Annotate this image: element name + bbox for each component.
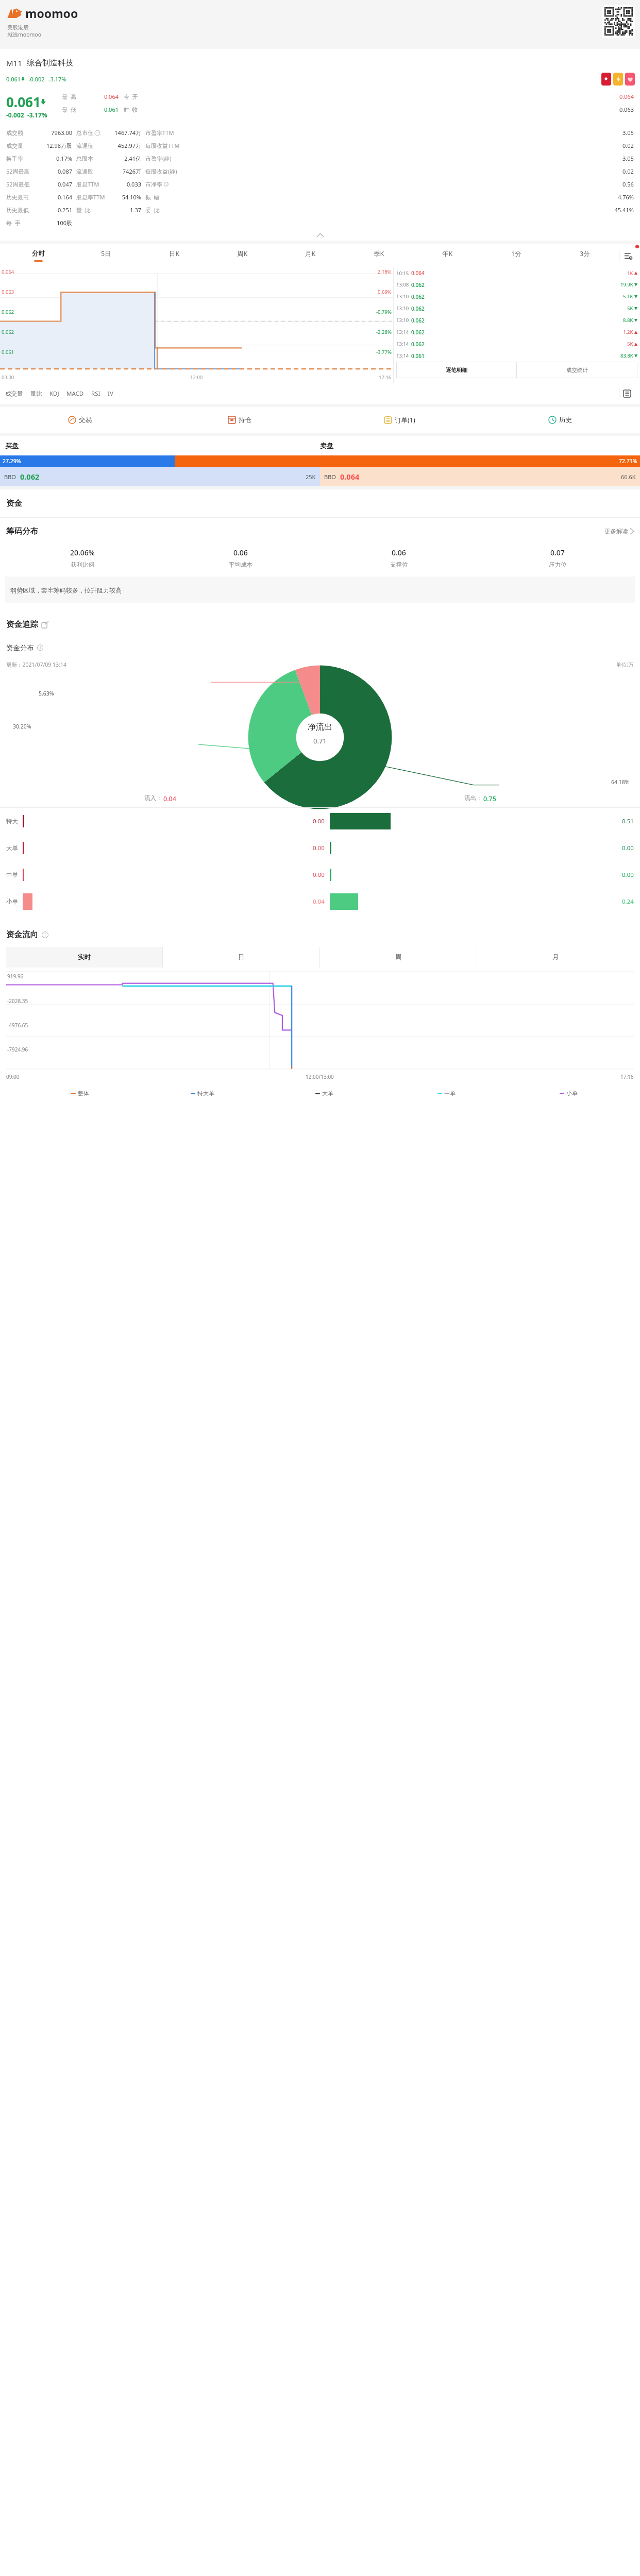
staticText: 0.06 <box>233 548 248 557</box>
staticText: 0.69% <box>378 289 392 295</box>
button[interactable]: 历史 <box>480 407 640 433</box>
button[interactable]: 1分 <box>482 244 550 267</box>
button[interactable]: MACD <box>66 389 91 398</box>
staticText: 持仓 <box>239 416 251 424</box>
staticText: 流通股 <box>76 168 93 175</box>
staticText: 0.07 <box>550 548 565 557</box>
staticText: 实时 <box>78 953 91 961</box>
staticText: 小单 <box>6 898 23 905</box>
staticText: 压力位 <box>549 561 567 568</box>
button[interactable]: 交易 <box>0 407 160 433</box>
button[interactable]: 逐笔明细 <box>396 362 516 378</box>
staticText: 12:00/13:00 <box>306 1073 334 1080</box>
staticText: 52周最低 <box>6 180 38 188</box>
staticText: moomoo <box>25 5 78 21</box>
staticText: 大单 <box>322 1090 333 1097</box>
staticText: 筹码分布 <box>6 526 38 536</box>
button[interactable]: IV <box>108 389 121 398</box>
staticText: 市盈率TTM <box>145 129 174 137</box>
button[interactable]: sg <box>601 73 611 86</box>
button[interactable]: 月K <box>276 244 345 267</box>
staticText: 17:16 <box>379 374 392 381</box>
staticText: 8.8K <box>623 317 633 324</box>
staticText: -7924.96 <box>7 1046 28 1053</box>
staticText: 0.064 <box>89 93 119 100</box>
staticText: 0.061 <box>6 75 21 83</box>
staticText: 逐笔明细 <box>446 367 467 374</box>
staticText: 量 比 <box>76 206 91 214</box>
staticText: 2.18% <box>378 268 392 275</box>
staticText: 25K <box>306 473 316 481</box>
staticText: 市盈率(静) <box>145 155 172 162</box>
staticText: 0.064 <box>411 269 425 277</box>
staticText: 总市值 <box>76 129 93 137</box>
staticText: 股息率TTM <box>76 193 105 201</box>
staticText: 支撑位 <box>390 561 408 568</box>
staticText: 20.06% <box>70 548 95 557</box>
staticText: 中单 <box>6 871 23 878</box>
button[interactable]: 持仓 <box>160 407 319 433</box>
staticText: 0.061 <box>6 93 41 111</box>
button[interactable]: 筹码分布 <box>6 518 634 545</box>
button[interactable]: 周K <box>208 244 276 267</box>
button[interactable]: 3分 <box>550 244 619 267</box>
staticText: 月K <box>305 249 316 258</box>
button[interactable]: hr <box>625 73 635 86</box>
button[interactable]: 量比 <box>30 390 49 397</box>
button[interactable]: BBO <box>320 467 640 486</box>
staticText: 13:08 <box>396 281 409 288</box>
staticText: 0.061 <box>89 106 119 113</box>
staticText: MACD <box>66 389 84 398</box>
staticText: 大单 <box>6 844 23 852</box>
button[interactable]: 季K <box>345 244 413 267</box>
button[interactable]: lt <box>613 73 623 86</box>
staticText: 获利比例 <box>71 561 94 568</box>
staticText: 5日 <box>101 249 111 258</box>
staticText: 量比 <box>30 390 42 397</box>
staticText: 19.9K <box>620 281 633 288</box>
button[interactable]: 年K <box>413 244 482 267</box>
staticText: 3.05 <box>622 129 634 137</box>
button[interactable]: 周 <box>320 947 477 968</box>
staticText: 卖盘 <box>320 442 635 450</box>
button[interactable]: BBO <box>0 467 320 486</box>
staticText: -4976.65 <box>7 1022 28 1029</box>
button[interactable]: 5日 <box>72 244 140 267</box>
button[interactable]: 成交统计 <box>517 362 637 378</box>
staticText: 7426万 <box>109 167 141 175</box>
button[interactable]: Chart settings <box>619 244 637 267</box>
staticText: 股息TTM <box>76 180 99 188</box>
staticText: 0.02 <box>622 142 634 149</box>
staticText: 12.98万股 <box>38 142 72 149</box>
button[interactable]: 分时 <box>4 244 72 267</box>
button[interactable]: 日K <box>140 244 208 267</box>
button[interactable]: KDJ <box>49 389 66 398</box>
button[interactable]: RSI <box>91 389 108 398</box>
button[interactable]: 日 <box>163 947 319 968</box>
staticText: 0.062 <box>411 305 425 312</box>
button[interactable]: Indicator list <box>619 383 635 404</box>
staticText: 0.062 <box>411 329 425 336</box>
staticText: 0.02 <box>622 167 634 175</box>
staticText: 昨 收 <box>124 106 149 113</box>
button[interactable]: 月 <box>477 947 634 968</box>
button[interactable]: 实时 <box>6 947 162 968</box>
button[interactable]: 成交量 <box>5 390 30 397</box>
staticText: 0.064 <box>149 93 634 100</box>
staticText: 0.063 <box>2 289 14 295</box>
button[interactable]: 资金追踪 <box>6 613 640 636</box>
staticText: 总股本 <box>76 155 93 162</box>
button[interactable]: 订单(1) <box>319 407 480 433</box>
staticText: 0.062 <box>20 471 40 482</box>
staticText: 更新：2021/07/09 13:14 <box>6 661 66 668</box>
staticText: -0.002 <box>28 75 45 83</box>
staticText: 换手率 <box>6 155 38 162</box>
staticText: 3分 <box>580 249 590 258</box>
staticText: 单位:万 <box>616 661 634 668</box>
staticText: 美股港股 <box>7 24 29 31</box>
staticText: 52周最高 <box>6 167 38 175</box>
staticText: 0.062 <box>411 293 425 300</box>
staticText: 中单 <box>444 1090 456 1097</box>
staticText: 13:10 <box>396 293 409 300</box>
